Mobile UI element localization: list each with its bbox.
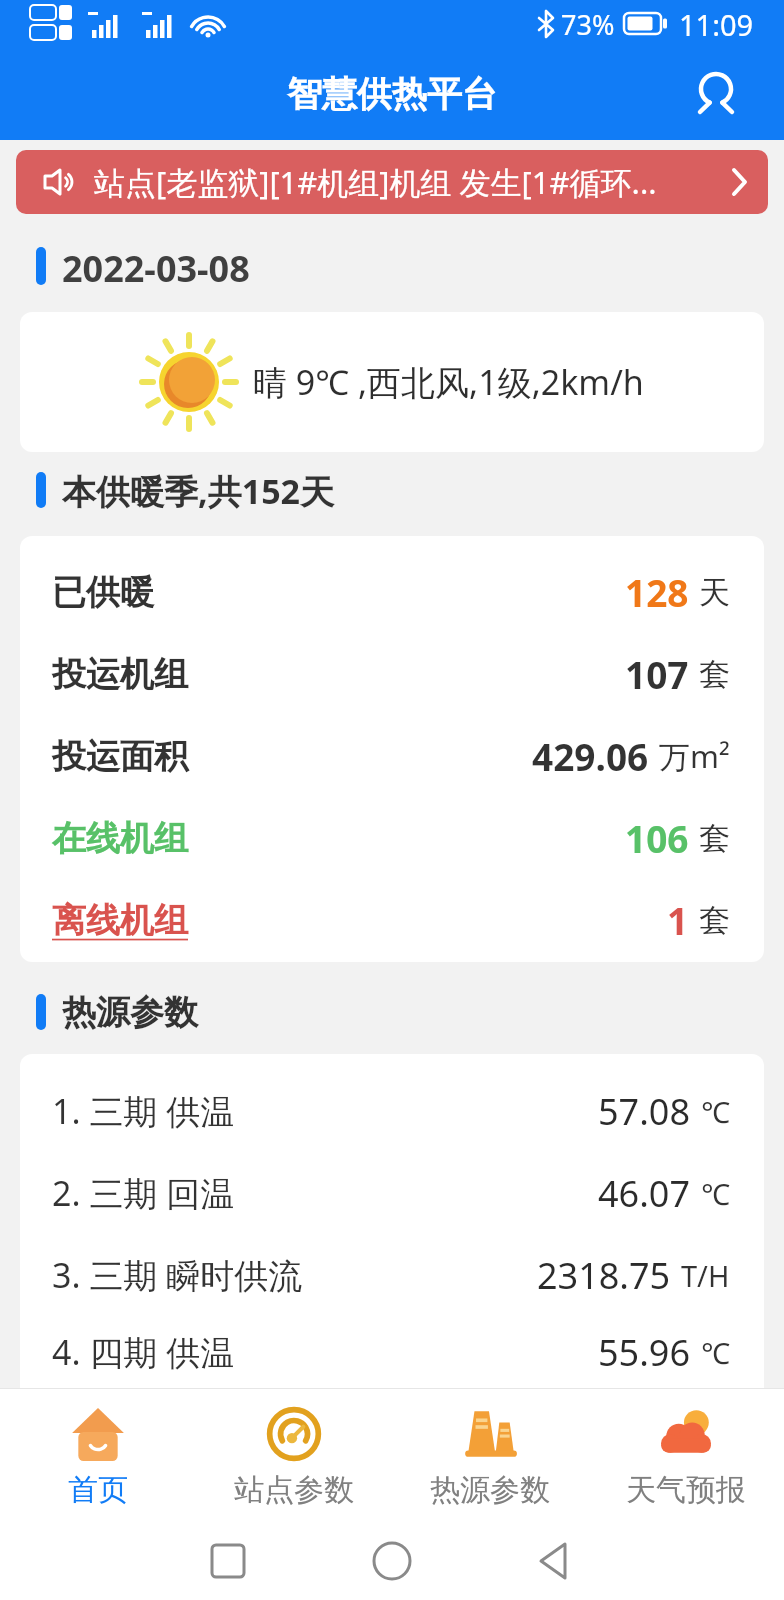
staticText: 11:09 <box>679 5 754 44</box>
staticText: 2318.75 <box>537 1251 671 1300</box>
staticText: 2. 三期 回温 <box>52 1170 235 1216</box>
staticText: 套 <box>699 655 730 694</box>
button[interactable]: 投运面积 <box>52 715 730 797</box>
staticText: 55.96 <box>598 1328 691 1377</box>
staticText: 本供暖季,共152天 <box>62 468 335 512</box>
button[interactable]: 4. 四期 供温 <box>52 1316 730 1388</box>
button[interactable]: 天气预报 <box>588 1389 784 1522</box>
staticText: ℃ <box>701 1092 730 1131</box>
staticText: 天 <box>699 573 730 612</box>
button[interactable]: 离线机组 <box>52 879 730 961</box>
staticText: 1. 三期 供温 <box>52 1088 235 1134</box>
staticText: 2022-03-08 <box>62 244 250 288</box>
staticText: 4. 四期 供温 <box>52 1329 235 1375</box>
staticText: 1 <box>667 895 689 945</box>
button[interactable]: 首页 <box>0 1389 196 1522</box>
staticText: 晴 9℃ ,西北风,1级,2km/h <box>253 359 644 405</box>
button[interactable]: 站点[老监狱][1#机组]机组 发生[1#循环... <box>16 150 768 214</box>
button[interactable]: 站点参数 <box>196 1389 392 1522</box>
staticText: ℃ <box>701 1333 730 1372</box>
staticText: 投运机组 <box>52 653 188 696</box>
staticText: ℃ <box>701 1174 730 1213</box>
staticText: 站点[老监狱][1#机组]机组 发生[1#循环... <box>94 161 732 203</box>
staticText: 3. 三期 瞬时供流 <box>52 1252 303 1298</box>
staticText: 投运面积 <box>52 735 188 778</box>
button[interactable]: 1. 三期 供温 <box>52 1070 730 1152</box>
button[interactable]: 已供暖 <box>52 551 730 633</box>
staticText: 已供暖 <box>52 571 154 614</box>
staticText: 首页 <box>68 1471 128 1509</box>
staticText: 套 <box>699 819 730 858</box>
staticText: 站点参数 <box>234 1471 354 1509</box>
button[interactable]: 热源参数 <box>392 1389 588 1522</box>
staticText: 128 <box>625 567 689 617</box>
staticText: 万m² <box>659 735 730 777</box>
staticText: 73% <box>561 6 615 43</box>
button[interactable]: 在线机组 <box>52 797 730 879</box>
staticText: T/H <box>681 1256 730 1295</box>
button[interactable] <box>688 66 744 122</box>
staticText: 429.06 <box>532 731 649 781</box>
staticText: 套 <box>699 901 730 940</box>
button[interactable]: 晴 9℃ ,西北风,1级,2km/h <box>20 312 764 452</box>
button[interactable]: 3. 三期 瞬时供流 <box>52 1234 730 1316</box>
staticText: 热源参数 <box>430 1471 550 1509</box>
staticText: 离线机组 <box>52 899 188 942</box>
staticText: 106 <box>625 813 689 863</box>
staticText: 在线机组 <box>52 817 188 860</box>
staticText: 天气预报 <box>626 1471 746 1509</box>
staticText: 智慧供热平台 <box>287 72 497 116</box>
staticText: 57.08 <box>598 1087 691 1136</box>
staticText: 热源参数 <box>62 991 198 1034</box>
button[interactable]: 投运机组 <box>52 633 730 715</box>
button[interactable]: 2. 三期 回温 <box>52 1152 730 1234</box>
staticText: 107 <box>625 649 689 699</box>
staticText: 46.07 <box>598 1169 691 1218</box>
